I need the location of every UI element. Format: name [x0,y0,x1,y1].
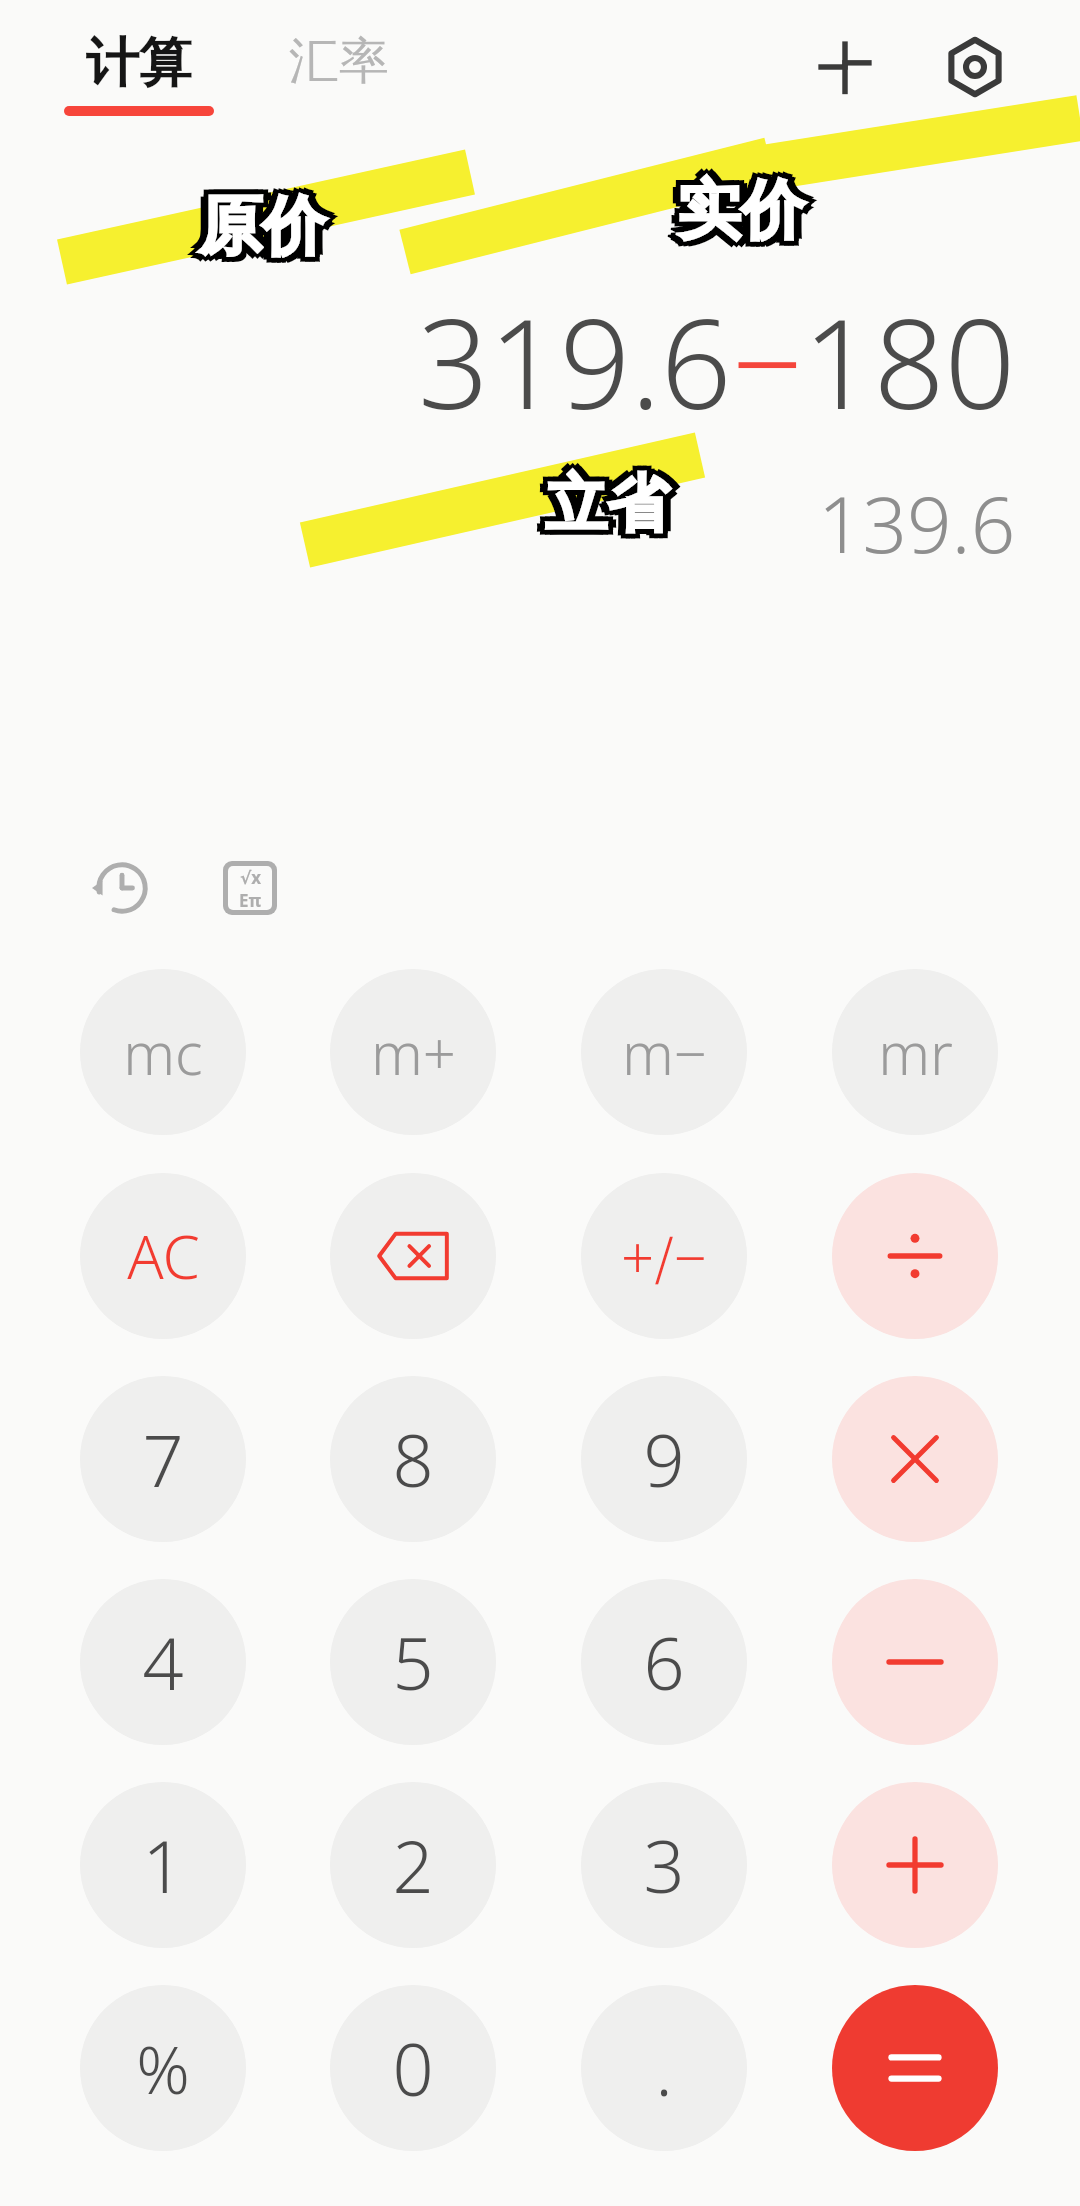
staticText: 立省 [545,470,669,548]
button[interactable]: 8 [330,1376,496,1542]
staticText: 实价 [682,165,810,246]
button[interactable]: 0 [330,1985,496,2151]
staticText: 立省 [540,460,664,538]
staticText: 实价 [672,175,800,256]
button[interactable]: m+ [330,969,496,1135]
staticText: √x [240,866,262,889]
staticText: Eπ [239,889,262,910]
button[interactable]: mr [832,969,998,1135]
button[interactable]: 3 [581,1782,747,1948]
staticText: mc [123,1013,203,1092]
button[interactable]: History [72,838,172,938]
button[interactable]: 计算 [50,22,228,124]
button[interactable]: mc [80,969,246,1135]
staticText: 立省 [550,470,674,548]
staticText: 立省 [545,465,669,543]
staticText: 180 [803,276,1016,445]
button[interactable]: +∕− [581,1173,747,1339]
button[interactable]: % [80,1985,246,2151]
staticText: 原价 [193,186,321,267]
staticText: m− [622,1013,707,1092]
button[interactable]: Collapse keypad [800,22,890,112]
staticText: 原价 [203,181,331,262]
staticText: 实价 [672,170,800,251]
button[interactable]: 2 [330,1782,496,1948]
staticText: 3 [643,1816,685,1914]
staticText: 原价 [198,181,326,262]
staticText: 2 [392,1816,434,1914]
staticText: 8 [392,1410,434,1508]
staticText: 6 [643,1613,685,1711]
button[interactable]: Backspace [330,1173,496,1339]
staticText: 立省 [545,460,669,538]
button[interactable]: 5 [330,1579,496,1745]
staticText: 立省 [540,470,664,548]
staticText: 1 [142,1816,184,1914]
staticText: 原价 [203,191,331,272]
button[interactable] [832,1579,998,1745]
staticText: % [136,2023,190,2113]
button[interactable]: 1 [80,1782,246,1948]
staticText: 0 [392,2019,434,2117]
button[interactable]: AC [80,1173,246,1339]
button[interactable] [832,1985,998,2151]
button[interactable]: Settings [930,22,1020,112]
staticText: 实价 [672,165,800,246]
button[interactable]: 4 [80,1579,246,1745]
staticText: 原价 [206,184,334,265]
staticText: 原价 [198,186,326,267]
button[interactable] [832,1376,998,1542]
staticText: 实价 [682,175,810,256]
staticText: 原价 [193,181,321,262]
staticText: 7 [142,1410,184,1508]
staticText: 4 [142,1613,184,1711]
staticText: 5 [392,1613,434,1711]
staticText: 139.6 [818,470,1016,576]
staticText: . [655,2019,673,2117]
staticText: 实价 [669,172,797,253]
staticText: mr [878,1013,953,1092]
staticText: 原价 [203,186,331,267]
staticText: 9 [643,1410,685,1508]
staticText: AC [127,1215,200,1297]
staticText: 立省 [550,465,674,543]
staticText: 实价 [685,168,813,249]
staticText: 实价 [682,170,810,251]
button[interactable] [832,1782,998,1948]
button[interactable] [832,1173,998,1339]
staticText: 计算 [86,30,192,97]
button[interactable]: Scientific calculator [200,838,300,938]
staticText: 立省 [540,465,664,543]
staticText: m+ [371,1013,456,1092]
staticText: 汇率 [289,30,389,93]
button[interactable]: . [581,1985,747,2151]
staticText: 实价 [677,175,805,256]
staticText: 原价 [198,191,326,272]
button[interactable]: 9 [581,1376,747,1542]
staticText: 立省 [537,467,661,545]
button[interactable]: m− [581,969,747,1135]
staticText: 实价 [677,165,805,246]
button[interactable]: 7 [80,1376,246,1542]
button[interactable]: 汇率 [275,22,403,101]
staticText: +∕− [621,1217,707,1296]
button[interactable]: 6 [581,1579,747,1745]
staticText: 实价 [677,170,805,251]
staticText: 原价 [190,188,318,269]
staticText: − [732,276,803,445]
staticText: 立省 [553,463,677,541]
staticText: 原价 [193,191,321,272]
staticText: 立省 [550,460,674,538]
staticText: 319.6 [418,276,732,445]
